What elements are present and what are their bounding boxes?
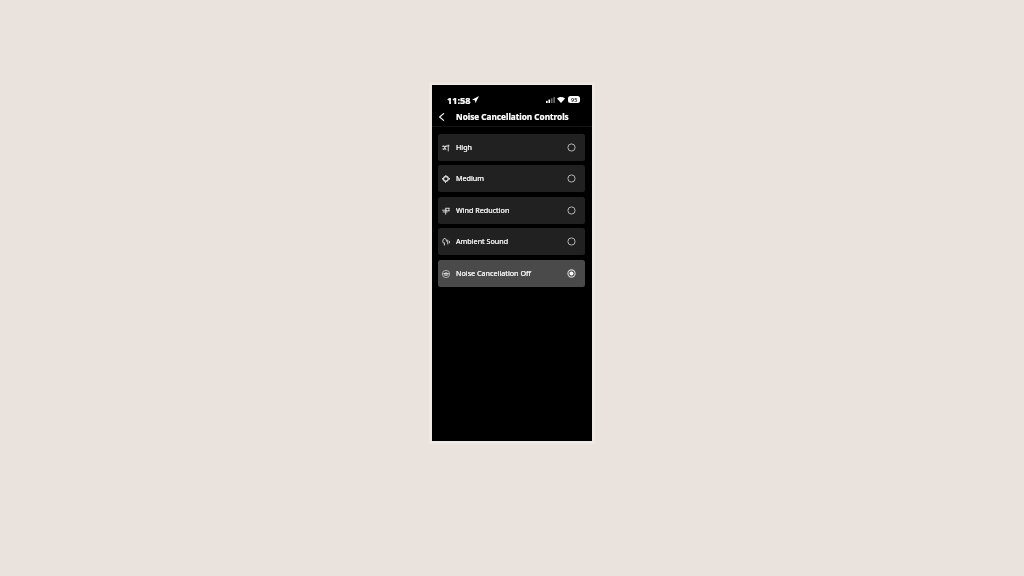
- staticText: Noise Cancellation Off: [456, 268, 531, 278]
- button[interactable]: High: [438, 134, 585, 161]
- button[interactable]: Back: [435, 110, 448, 123]
- button[interactable]: Noise Cancellation Off: [438, 260, 585, 287]
- staticText: Ambient Sound: [456, 236, 509, 246]
- staticText: Wind Reduction: [456, 205, 510, 215]
- button[interactable]: Ambient Sound: [438, 228, 585, 255]
- staticText: 11:58: [447, 94, 471, 104]
- staticText: 95: [571, 96, 578, 103]
- button[interactable]: Wind Reduction: [438, 197, 585, 224]
- button[interactable]: Medium: [438, 165, 585, 192]
- staticText: Medium: [456, 173, 485, 183]
- staticText: Noise Cancellation Controls: [456, 111, 569, 122]
- staticText: High: [456, 142, 473, 152]
